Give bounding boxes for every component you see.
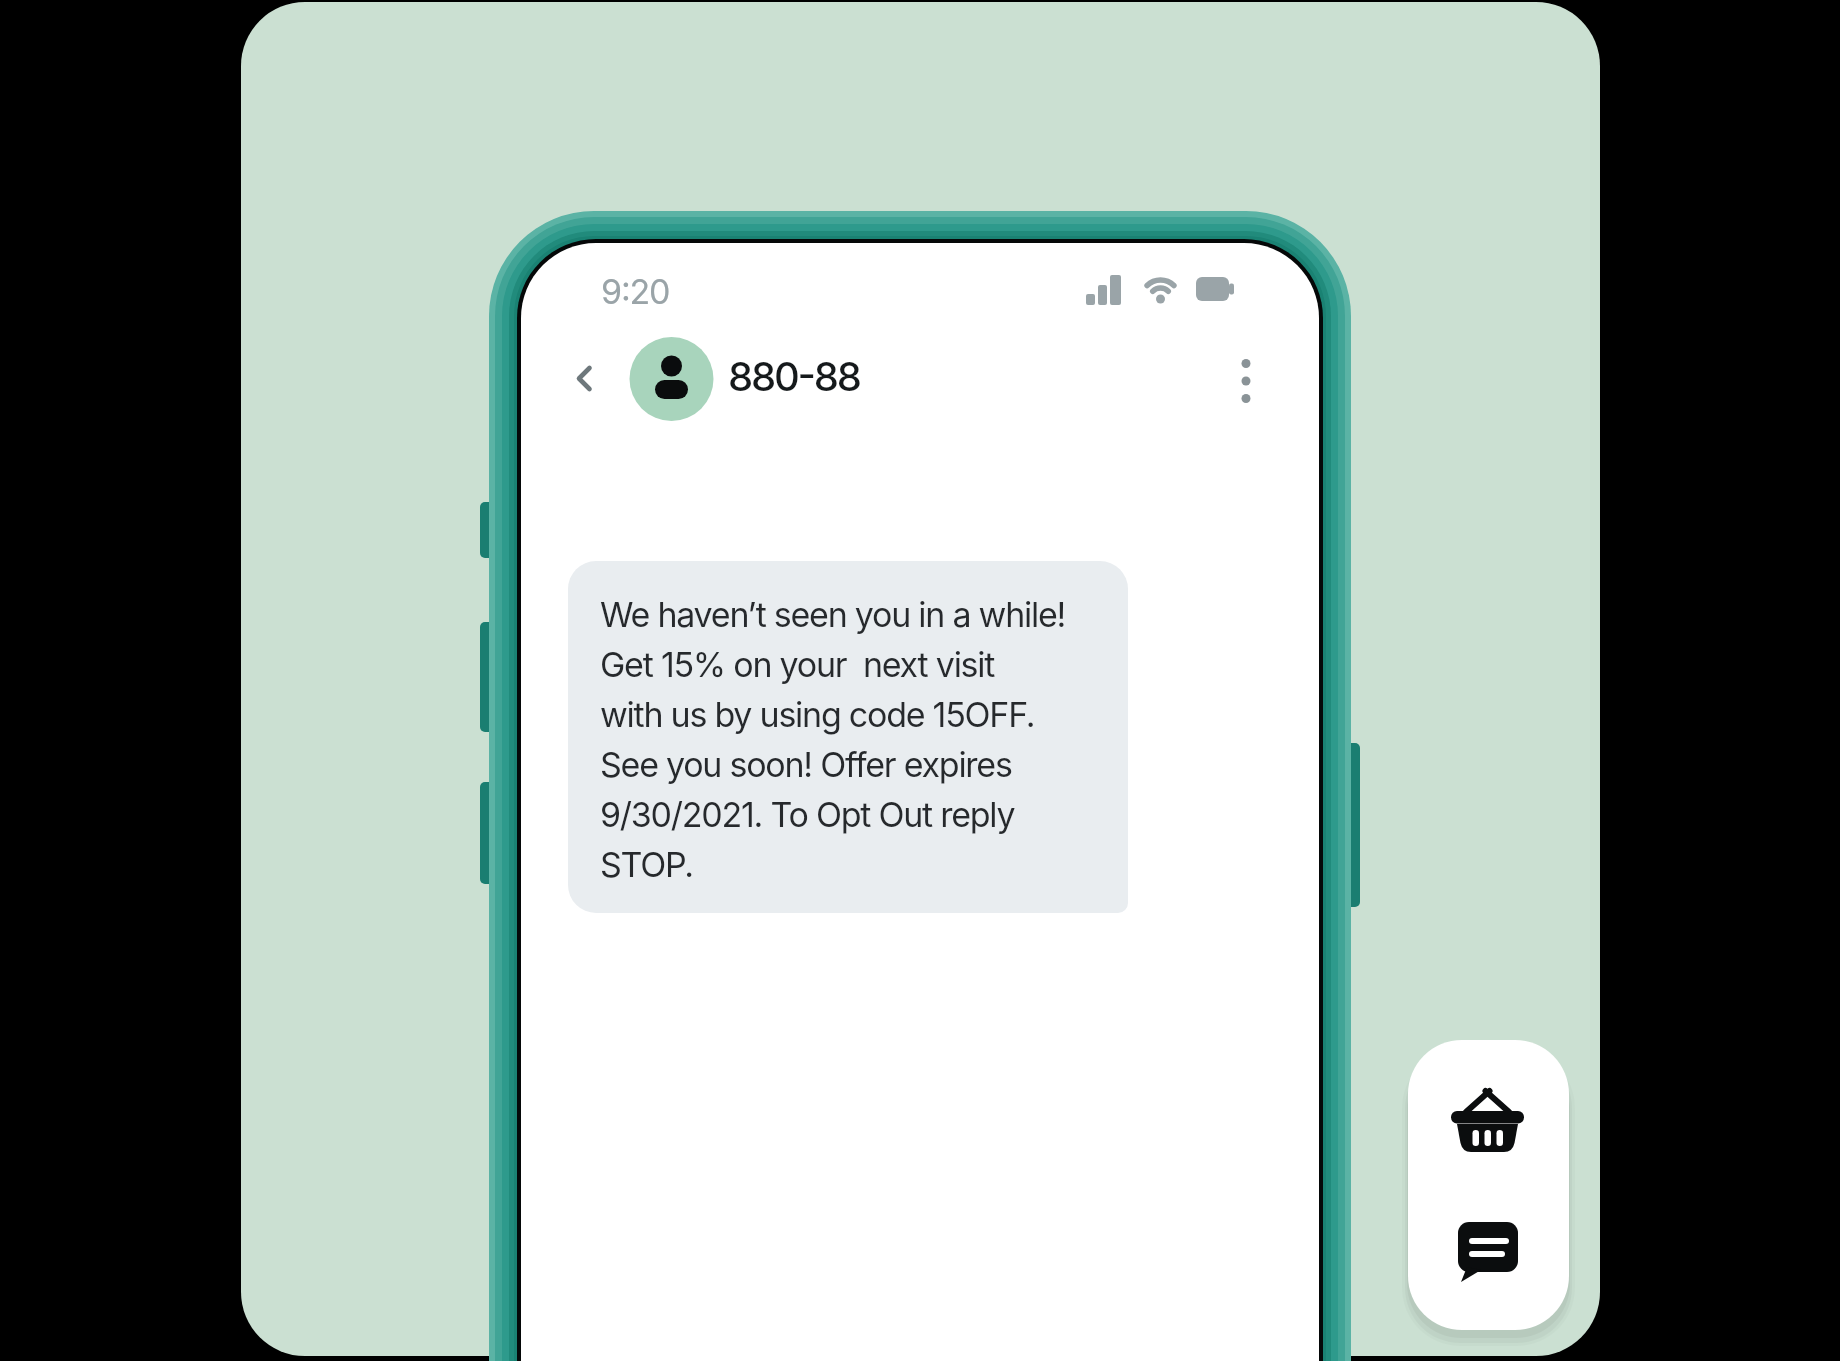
staticText: We haven’t seen you in a while! Get 15% … [600,594,1066,885]
button[interactable] [629,337,714,422]
button[interactable] [1446,1086,1530,1158]
staticText: 880-88 [728,352,860,400]
staticText: 9:20 [601,271,670,312]
button[interactable] [1450,1214,1526,1292]
button[interactable] [1226,355,1266,405]
button[interactable] [566,355,606,403]
